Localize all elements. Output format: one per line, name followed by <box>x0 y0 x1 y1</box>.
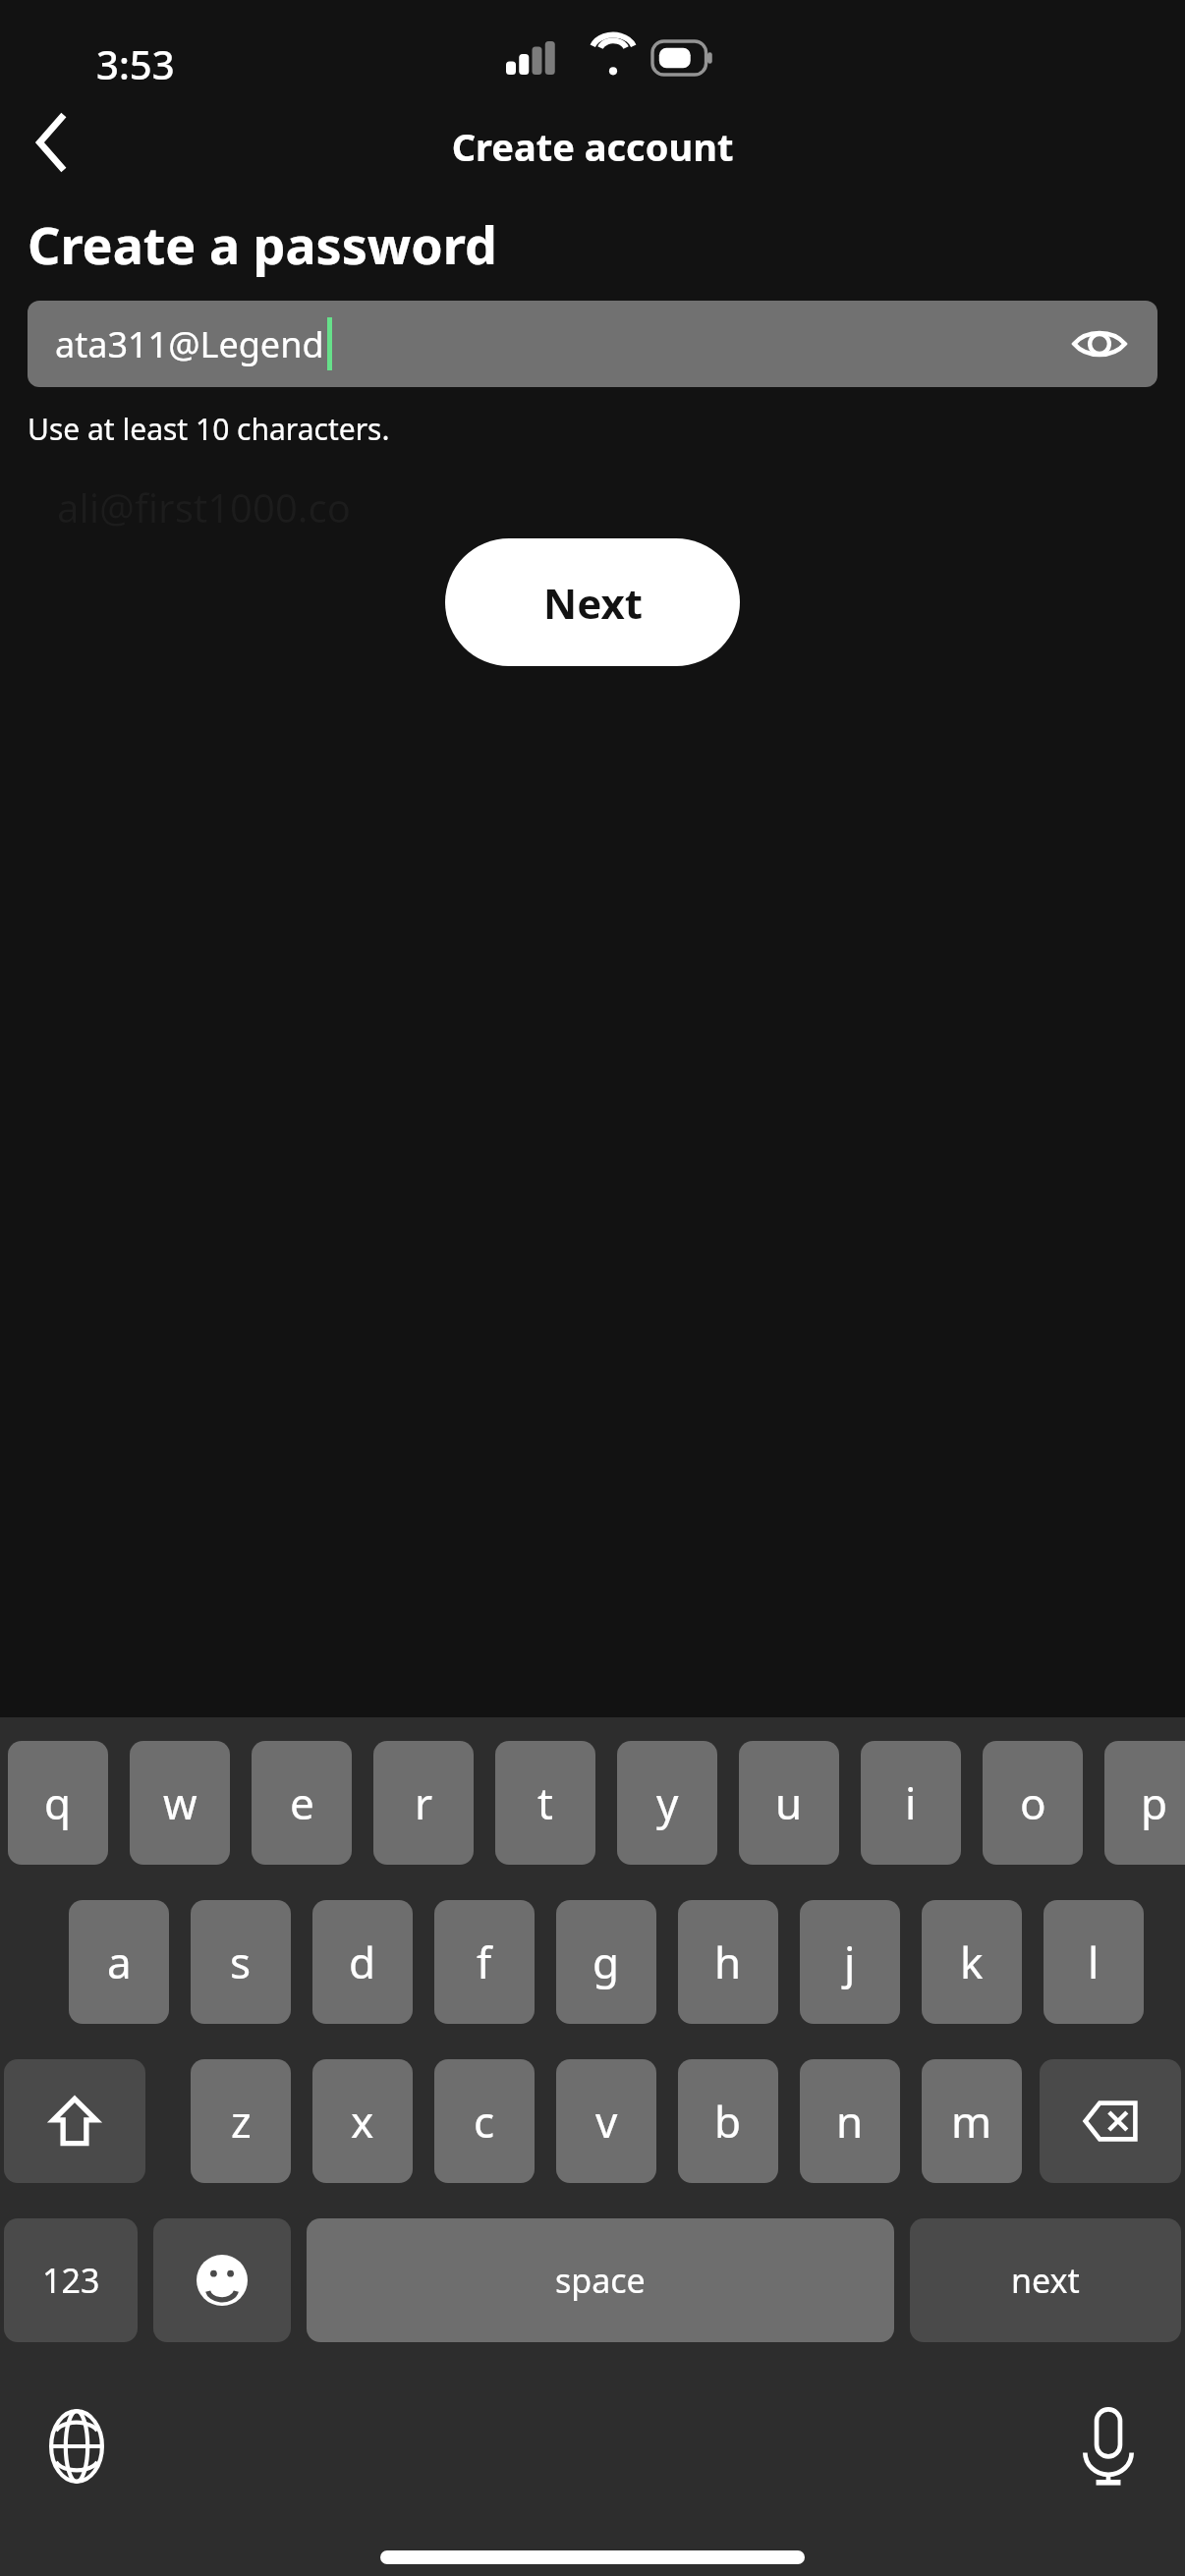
staticText: f <box>477 1932 492 1991</box>
button[interactable]: a <box>69 1900 169 2024</box>
button[interactable]: c <box>434 2059 535 2183</box>
button[interactable]: Voice input <box>1059 2397 1157 2495</box>
button[interactable]: x <box>312 2059 413 2183</box>
staticText: Create account <box>0 121 1185 172</box>
button[interactable]: n <box>800 2059 900 2183</box>
button[interactable]: v <box>556 2059 656 2183</box>
button[interactable]: Backspace <box>1040 2059 1181 2183</box>
staticText: c <box>474 2092 495 2151</box>
staticText: j <box>844 1932 856 1991</box>
button[interactable]: e <box>252 1741 352 1865</box>
staticText: t <box>537 1773 553 1832</box>
button[interactable]: o <box>983 1741 1083 1865</box>
button[interactable]: u <box>739 1741 839 1865</box>
button[interactable]: i <box>861 1741 961 1865</box>
button[interactable]: Show password <box>1065 309 1134 378</box>
button[interactable]: y <box>617 1741 717 1865</box>
button[interactable]: t <box>495 1741 595 1865</box>
staticText: d <box>349 1932 376 1991</box>
staticText: y <box>656 1773 679 1832</box>
staticText: b <box>714 2092 742 2151</box>
staticText: i <box>905 1773 917 1832</box>
button[interactable]: j <box>800 1900 900 2024</box>
staticText: n <box>836 2092 864 2151</box>
button[interactable]: z <box>191 2059 291 2183</box>
button[interactable]: k <box>922 1900 1022 2024</box>
staticText: 3:53 <box>96 37 175 90</box>
button[interactable]: next <box>910 2218 1181 2342</box>
button[interactable]: r <box>373 1741 474 1865</box>
button[interactable]: ata311@Legend <box>28 301 1157 387</box>
button[interactable]: Back <box>6 103 100 182</box>
staticText: ali@first1000.co <box>57 480 351 533</box>
button[interactable]: m <box>922 2059 1022 2183</box>
staticText: Next <box>543 575 643 631</box>
staticText: k <box>960 1932 984 1991</box>
staticText: e <box>290 1773 314 1832</box>
staticText: space <box>555 2258 646 2303</box>
staticText: q <box>44 1773 72 1832</box>
staticText: o <box>1020 1773 1046 1832</box>
staticText: g <box>592 1932 620 1991</box>
staticText: m <box>951 2092 992 2151</box>
button[interactable]: w <box>130 1741 230 1865</box>
button[interactable]: s <box>191 1900 291 2024</box>
button[interactable]: g <box>556 1900 656 2024</box>
staticText: l <box>1088 1932 1100 1991</box>
button[interactable]: Shift <box>4 2059 145 2183</box>
staticText: next <box>1011 2258 1080 2303</box>
button[interactable]: h <box>678 1900 778 2024</box>
button[interactable]: l <box>1044 1900 1144 2024</box>
staticText: Use at least 10 characters. <box>28 409 390 449</box>
staticText: x <box>351 2092 374 2151</box>
staticText: r <box>415 1773 433 1832</box>
staticText: u <box>775 1773 803 1832</box>
button[interactable]: q <box>8 1741 108 1865</box>
button[interactable]: d <box>312 1900 413 2024</box>
button[interactable]: Numbers <box>4 2218 138 2342</box>
button[interactable]: Next <box>445 538 740 666</box>
staticText: s <box>230 1932 252 1991</box>
staticText: w <box>163 1773 197 1832</box>
staticText: h <box>714 1932 742 1991</box>
button[interactable]: space <box>307 2218 894 2342</box>
staticText: Create a password <box>28 209 497 279</box>
staticText: ata311@Legend <box>55 320 324 368</box>
button[interactable]: Change keyboard language <box>28 2397 126 2495</box>
button[interactable]: Emoji <box>153 2218 291 2342</box>
staticText: v <box>595 2092 618 2151</box>
button[interactable]: b <box>678 2059 778 2183</box>
staticText: p <box>1141 1773 1168 1832</box>
button[interactable]: p <box>1104 1741 1185 1865</box>
staticText: 123 <box>42 2258 100 2303</box>
staticText: a <box>107 1932 132 1991</box>
button[interactable]: f <box>434 1900 535 2024</box>
staticText: z <box>231 2092 252 2151</box>
